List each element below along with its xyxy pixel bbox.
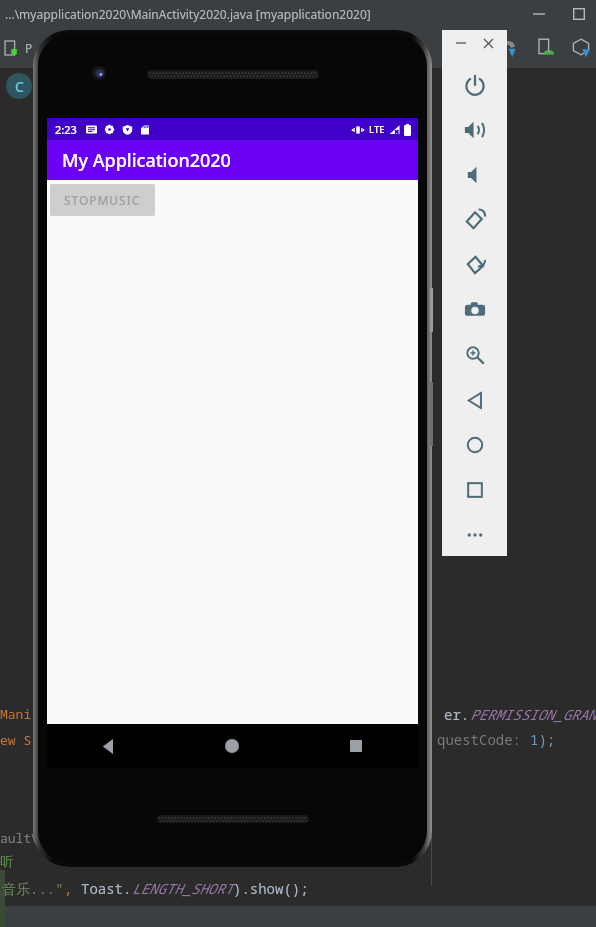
button[interactable]: Maximise window <box>570 5 588 23</box>
button[interactable]: Minimise emulator panel <box>452 34 470 52</box>
button[interactable]: AVD Manager <box>535 38 555 58</box>
staticText: aultV <box>0 829 40 847</box>
staticText: 2:23 <box>55 122 77 137</box>
button[interactable]: Overview <box>458 473 492 507</box>
button[interactable]: Recent apps <box>294 724 418 768</box>
staticText: 听 <box>0 853 13 869</box>
staticText: ).show(); <box>233 879 309 898</box>
staticText: er. <box>444 705 470 724</box>
button[interactable]: Back <box>47 724 170 768</box>
staticText: , <box>64 879 81 898</box>
button[interactable]: Close emulator panel <box>479 34 497 52</box>
button[interactable]: Rotate right <box>458 248 492 282</box>
button[interactable]: STOPMUSIC <box>50 184 155 216</box>
button[interactable]: Zoom <box>458 338 492 372</box>
button[interactable]: Volume up <box>458 113 492 147</box>
staticText: ...\myapplication2020\MainActivity2020.j… <box>5 6 371 22</box>
staticText: LTE <box>369 123 385 136</box>
staticText: P <box>25 40 33 56</box>
staticText: My Application2020 <box>62 148 231 173</box>
button[interactable]: Minimise window <box>530 5 548 23</box>
staticText: ew S <box>0 731 32 749</box>
button[interactable]: Back <box>458 383 492 417</box>
button[interactable]: Sync Gradle <box>499 38 519 58</box>
staticText: STOPMUSIC <box>64 192 141 208</box>
staticText: questCode: <box>437 730 530 749</box>
button[interactable]: Volume down <box>458 158 492 192</box>
button[interactable]: Home <box>458 428 492 462</box>
staticText: LENGTH_SHORT <box>132 879 233 898</box>
button[interactable]: More options <box>458 518 492 552</box>
button[interactable]: Power <box>458 68 492 102</box>
button[interactable]: SDK Manager <box>571 38 591 58</box>
staticText: 1); <box>530 730 556 749</box>
button[interactable]: Account <box>6 73 32 99</box>
staticText: PERMISSION_GRANT <box>470 705 596 724</box>
staticText: 音乐..." <box>2 879 64 898</box>
button[interactable]: Rotate left <box>458 203 492 237</box>
staticText: Mani <box>0 705 32 723</box>
staticText: C <box>15 77 24 96</box>
staticText: Toast. <box>81 879 132 898</box>
button[interactable]: Screenshot <box>458 293 492 327</box>
button[interactable]: Home <box>170 724 294 768</box>
